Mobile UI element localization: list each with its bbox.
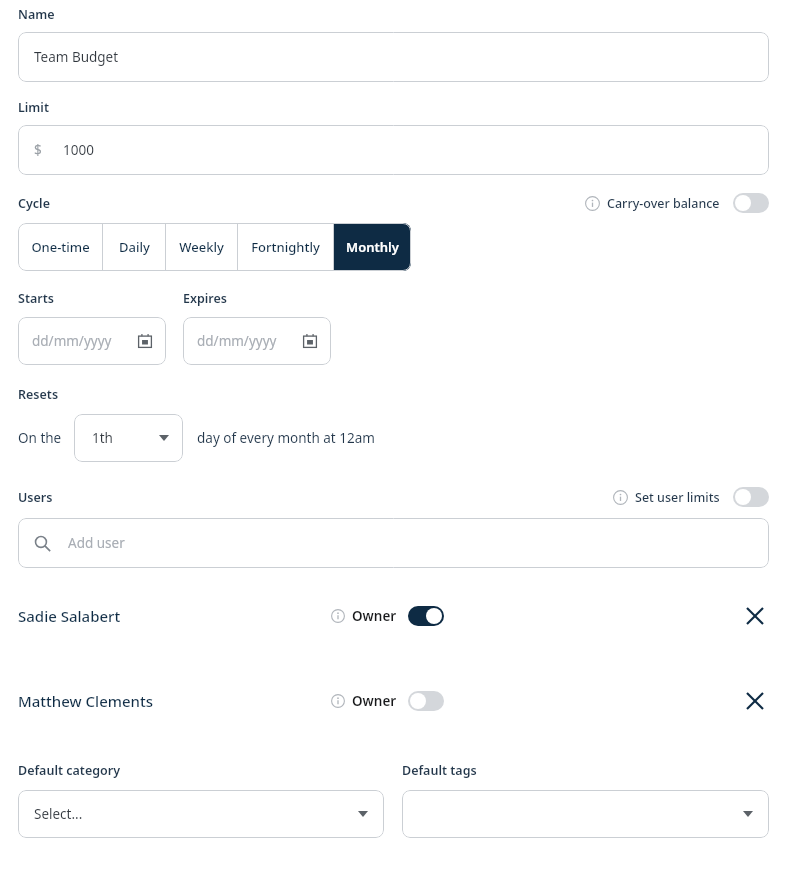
staticText: Cycle <box>18 195 50 212</box>
staticText: Team Budget <box>34 48 119 66</box>
button[interactable]: dd/mm/yyyy <box>18 317 166 365</box>
button[interactable]: Remove Sadie Salabert <box>740 601 770 631</box>
staticText: $ <box>34 141 42 159</box>
staticText: Set user limits <box>635 489 720 506</box>
staticText: Expires <box>183 290 227 307</box>
staticText: Carry-over balance <box>607 195 720 212</box>
button[interactable]: Daily <box>103 223 165 271</box>
staticText: Fortnightly <box>251 238 320 256</box>
button[interactable]: Fortnightly <box>238 223 333 271</box>
button[interactable]: Carry-over balance <box>585 193 769 213</box>
staticText: Starts <box>18 290 54 307</box>
staticText: 1th <box>92 429 113 447</box>
staticText: Add user <box>68 534 125 552</box>
button[interactable]: $ <box>18 125 769 175</box>
staticText: Default category <box>18 762 121 779</box>
staticText: Monthly <box>346 238 399 256</box>
staticText: Limit <box>18 99 49 116</box>
staticText: Name <box>18 6 55 23</box>
staticText: Select... <box>34 805 83 823</box>
button[interactable] <box>402 790 769 838</box>
staticText: Owner <box>352 607 397 625</box>
staticText: Sadie Salabert <box>18 606 121 626</box>
staticText: Owner <box>352 692 397 710</box>
staticText: dd/mm/yyyy <box>197 332 277 350</box>
button[interactable]: Owner toggle for Matthew Clements <box>408 691 444 711</box>
button[interactable]: Add user <box>18 518 769 568</box>
button[interactable]: Owner <box>331 606 444 626</box>
staticText: Users <box>18 489 53 506</box>
button[interactable]: Monthly <box>334 223 411 271</box>
button[interactable]: Set user limits toggle <box>733 487 769 507</box>
staticText: Matthew Clements <box>18 691 154 711</box>
button[interactable]: Team Budget <box>18 32 769 82</box>
staticText: dd/mm/yyyy <box>32 332 112 350</box>
button[interactable]: 1th <box>74 414 183 462</box>
button[interactable]: Weekly <box>166 223 237 271</box>
button[interactable]: dd/mm/yyyy <box>183 317 331 365</box>
button[interactable]: Remove Matthew Clements <box>740 686 770 716</box>
button[interactable]: Select... <box>18 790 384 838</box>
staticText: Daily <box>119 238 150 256</box>
staticText: day of every month at 12am <box>197 429 375 447</box>
staticText: Resets <box>18 386 59 403</box>
button[interactable]: Carry-over balance toggle <box>733 193 769 213</box>
staticText: One-time <box>31 238 90 256</box>
button[interactable]: Owner toggle for Sadie Salabert <box>408 606 444 626</box>
staticText: 1000 <box>63 141 94 159</box>
staticText: Default tags <box>402 762 477 779</box>
button[interactable]: One-time <box>18 223 102 271</box>
staticText: Weekly <box>179 238 224 256</box>
staticText: On the <box>18 429 62 447</box>
button[interactable]: Set user limits <box>613 487 769 507</box>
button[interactable]: Owner <box>331 691 444 711</box>
